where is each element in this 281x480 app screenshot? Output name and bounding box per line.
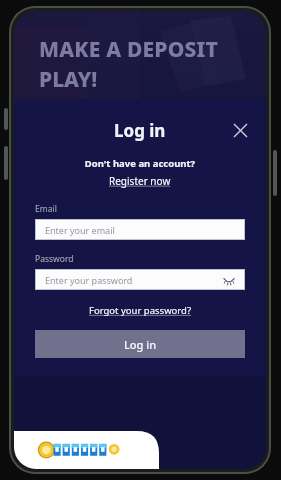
button[interactable]: Forgot your password? bbox=[89, 304, 192, 317]
button[interactable]: Close bbox=[227, 117, 253, 143]
staticText: Forgot your password? bbox=[89, 304, 192, 317]
staticText: Ne bbox=[227, 360, 247, 379]
button[interactable]: Enter your email bbox=[36, 220, 244, 239]
button[interactable]: Show password bbox=[222, 273, 236, 287]
staticText: Log in bbox=[124, 337, 157, 352]
staticText: Password bbox=[35, 253, 74, 265]
staticText: Email bbox=[35, 203, 57, 215]
staticText: Enter your email bbox=[45, 224, 115, 236]
staticText: Don't have an account? bbox=[14, 157, 266, 170]
button[interactable]: Enter your password bbox=[36, 270, 244, 289]
staticText: MAKE A DEPOSIT bbox=[39, 35, 218, 64]
button[interactable]: Register now bbox=[109, 174, 171, 188]
staticText: PLAY! bbox=[39, 65, 98, 94]
staticText: Register now bbox=[109, 174, 171, 188]
staticText: Enter your password bbox=[45, 274, 133, 286]
button[interactable]: Log in bbox=[35, 330, 245, 358]
button[interactable]: Casinos.cc home bbox=[14, 431, 159, 469]
staticText: Log in bbox=[114, 119, 166, 142]
button[interactable] bbox=[224, 307, 245, 334]
